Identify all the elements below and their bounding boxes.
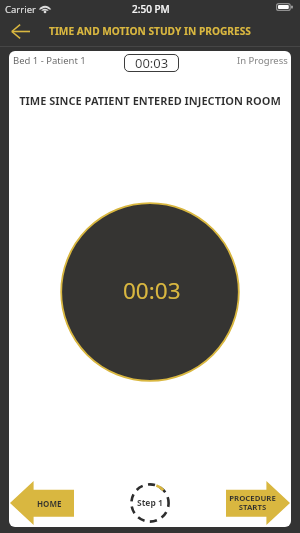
button[interactable]: HOME — [10, 481, 74, 525]
staticText: TIME AND MOTION STUDY IN PROGRESS — [49, 24, 251, 38]
staticText: HOME — [37, 498, 62, 509]
staticText: 00:03 — [135, 54, 169, 72]
button[interactable]: PROCEDURE STARTS — [226, 481, 290, 525]
staticText: Step 1 — [137, 497, 163, 509]
staticText: 00:03 — [123, 275, 181, 306]
staticText: TIME SINCE PATIENT ENTERED INJECTION ROO… — [9, 93, 291, 108]
button[interactable]: Back — [5, 18, 35, 44]
staticText: 2:50 PM — [132, 2, 170, 16]
staticText: Bed 1 - Patient 1 — [13, 54, 86, 67]
staticText: Carrier — [5, 3, 36, 16]
button[interactable]: 00:03 — [124, 54, 179, 72]
button[interactable]: Step 1 — [130, 483, 170, 523]
staticText: In Progress — [237, 54, 288, 67]
staticText: PROCEDURE STARTS — [229, 493, 276, 513]
